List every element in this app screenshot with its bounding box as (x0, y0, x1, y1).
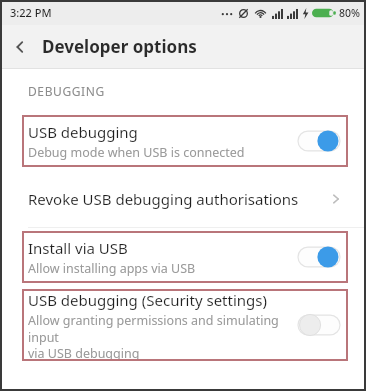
staticText: Developer options (42, 35, 197, 58)
staticText: 80% (339, 6, 360, 20)
staticText: Allow installing apps via USB (28, 260, 196, 277)
button[interactable]: Toggle off (298, 313, 340, 337)
staticText: DEBUGGING (28, 83, 105, 99)
staticText: USB debugging (Security settings) (28, 290, 267, 310)
button[interactable]: Toggle on (298, 245, 340, 269)
staticText: Install via USB (28, 238, 128, 258)
staticText: Revoke USB debugging authorisations (28, 189, 328, 209)
staticText: Allow granting permissions and simulatin… (28, 312, 290, 361)
button[interactable]: USB debugging (Security settings) (22, 289, 348, 361)
staticText: Debug mode when USB is connected (28, 144, 245, 161)
button[interactable]: Revoke USB debugging authorisations (0, 170, 366, 227)
staticText: 3:22 PM (10, 5, 52, 20)
button[interactable]: Install via USB (22, 231, 348, 283)
staticText: USB debugging (28, 122, 138, 142)
button[interactable]: USB debugging (22, 115, 348, 167)
button[interactable]: Back (0, 27, 40, 67)
button[interactable]: Toggle on (298, 129, 340, 153)
